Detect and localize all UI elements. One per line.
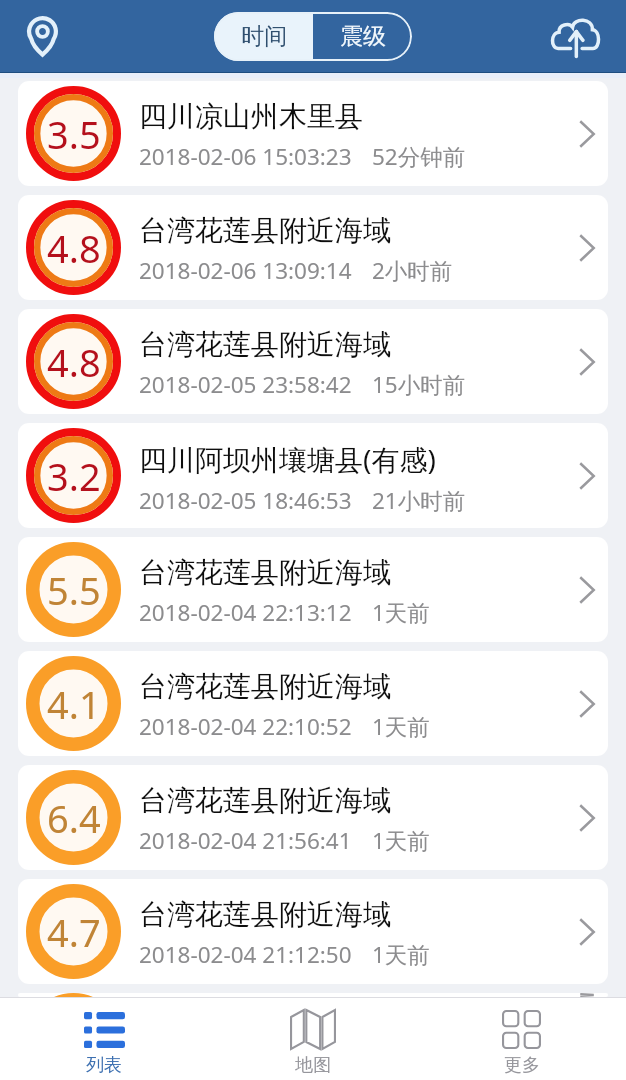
staticText: 15小时前	[372, 369, 466, 400]
staticText: 2018-02-06 15:03:23	[139, 141, 352, 172]
button[interactable]: 地图	[208, 998, 417, 1080]
staticText: 21小时前	[372, 485, 466, 516]
staticText: 4.8	[47, 336, 101, 388]
button[interactable]: 台湾花莲县附近海域	[18, 195, 608, 300]
staticText: 2018-02-06 13:09:14	[139, 255, 352, 286]
staticText: 4.7	[47, 906, 101, 958]
staticText: 2018-02-04 22:13:12	[139, 597, 352, 628]
staticText: 台湾花莲县附近海域	[139, 897, 391, 932]
staticText: 四川阿坝州壤塘县(有感)	[139, 440, 436, 478]
staticText: 台湾花莲县附近海域	[139, 213, 391, 248]
staticText: 5.1	[47, 993, 101, 997]
staticText: 2018-02-05 18:46:53	[139, 485, 352, 516]
staticText: 1天前	[372, 825, 430, 856]
staticText: 4.1	[47, 678, 101, 730]
staticText: 台湾花莲县附近海域	[139, 669, 391, 704]
button[interactable]: 四川凉山州木里县	[18, 81, 608, 186]
staticText: 台湾花莲县附近海域	[139, 783, 391, 818]
button[interactable]: 台湾花莲县附近海域	[18, 993, 608, 997]
staticText: 列表	[86, 1054, 122, 1077]
staticText: 5.5	[47, 564, 101, 616]
button[interactable]: 台湾花莲县附近海域	[18, 651, 608, 756]
button[interactable]: 列表	[0, 998, 208, 1080]
staticText: 时间	[241, 22, 287, 51]
staticText: 2018-02-05 23:58:42	[139, 369, 352, 400]
button[interactable]: 四川阿坝州壤塘县(有感)	[18, 423, 608, 528]
staticText: 1天前	[372, 711, 430, 742]
staticText: 2018-02-04 21:12:50	[139, 939, 352, 970]
staticText: 1天前	[372, 939, 430, 970]
staticText: 震级	[340, 22, 386, 51]
button[interactable]: 台湾花莲县附近海域	[18, 879, 608, 984]
staticText: 3.2	[47, 450, 101, 502]
staticText: 台湾花莲县附近海域	[139, 327, 391, 362]
staticText: 2018-02-04 21:56:41	[139, 825, 352, 856]
button[interactable]: 台湾花莲县附近海域	[18, 765, 608, 870]
button[interactable]: 震级	[313, 12, 412, 61]
staticText: 52分钟前	[372, 141, 466, 172]
staticText: 4.8	[47, 222, 101, 274]
staticText: 3.5	[47, 108, 101, 160]
staticText: 1天前	[372, 597, 430, 628]
staticText: 地图	[295, 1054, 331, 1077]
button[interactable]: 台湾花莲县附近海域	[18, 309, 608, 414]
button[interactable]: Location	[13, 7, 72, 66]
button[interactable]: Upload	[546, 7, 605, 66]
button[interactable]: 更多	[417, 998, 626, 1080]
staticText: 6.4	[47, 792, 101, 844]
staticText: 四川凉山州木里县	[139, 99, 363, 134]
staticText: 台湾花莲县附近海域	[139, 555, 391, 590]
staticText: 2小时前	[372, 255, 453, 286]
staticText: 更多	[504, 1054, 540, 1077]
button[interactable]: 时间	[214, 12, 313, 61]
button[interactable]: 台湾花莲县附近海域	[18, 537, 608, 642]
staticText: 2018-02-04 22:10:52	[139, 711, 352, 742]
